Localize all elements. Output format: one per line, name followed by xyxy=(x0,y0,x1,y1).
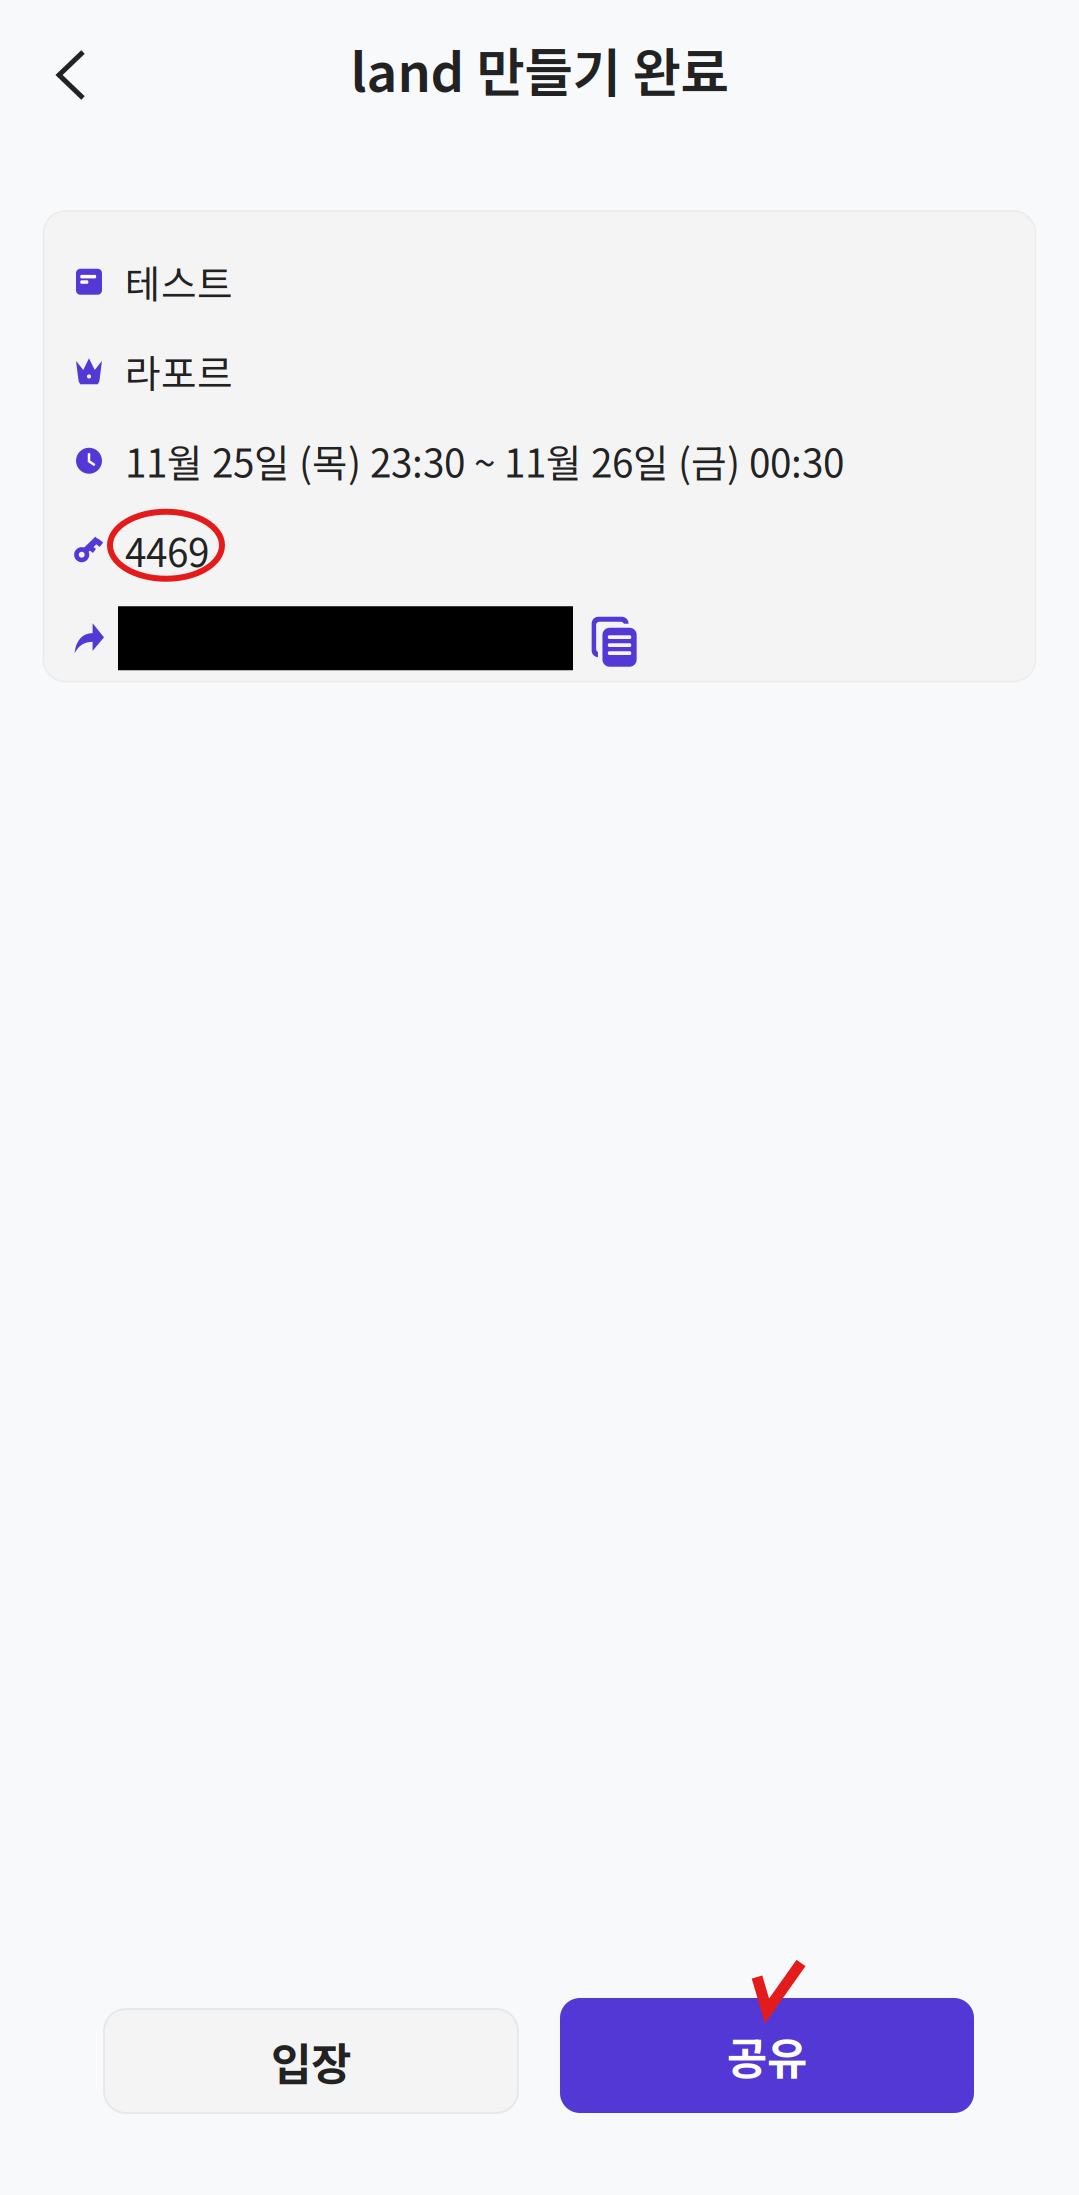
staticText: 11월 25일 (목) 23:30 ~ 11월 26일 (금) 00:30 xyxy=(125,433,844,489)
button[interactable]: 복사 xyxy=(585,610,637,666)
staticText: 라포르 xyxy=(125,343,233,399)
staticText: 공유 xyxy=(727,2024,807,2087)
staticText: 입장 xyxy=(271,2029,351,2093)
button[interactable]: 입장 xyxy=(104,2009,518,2113)
button[interactable]: 뒤로 xyxy=(0,25,142,125)
staticText: 4469 xyxy=(125,522,209,578)
staticText: land 만들기 완료 xyxy=(350,31,728,107)
button[interactable]: 공유 xyxy=(560,1998,974,2113)
staticText: 테스트 xyxy=(125,254,233,310)
